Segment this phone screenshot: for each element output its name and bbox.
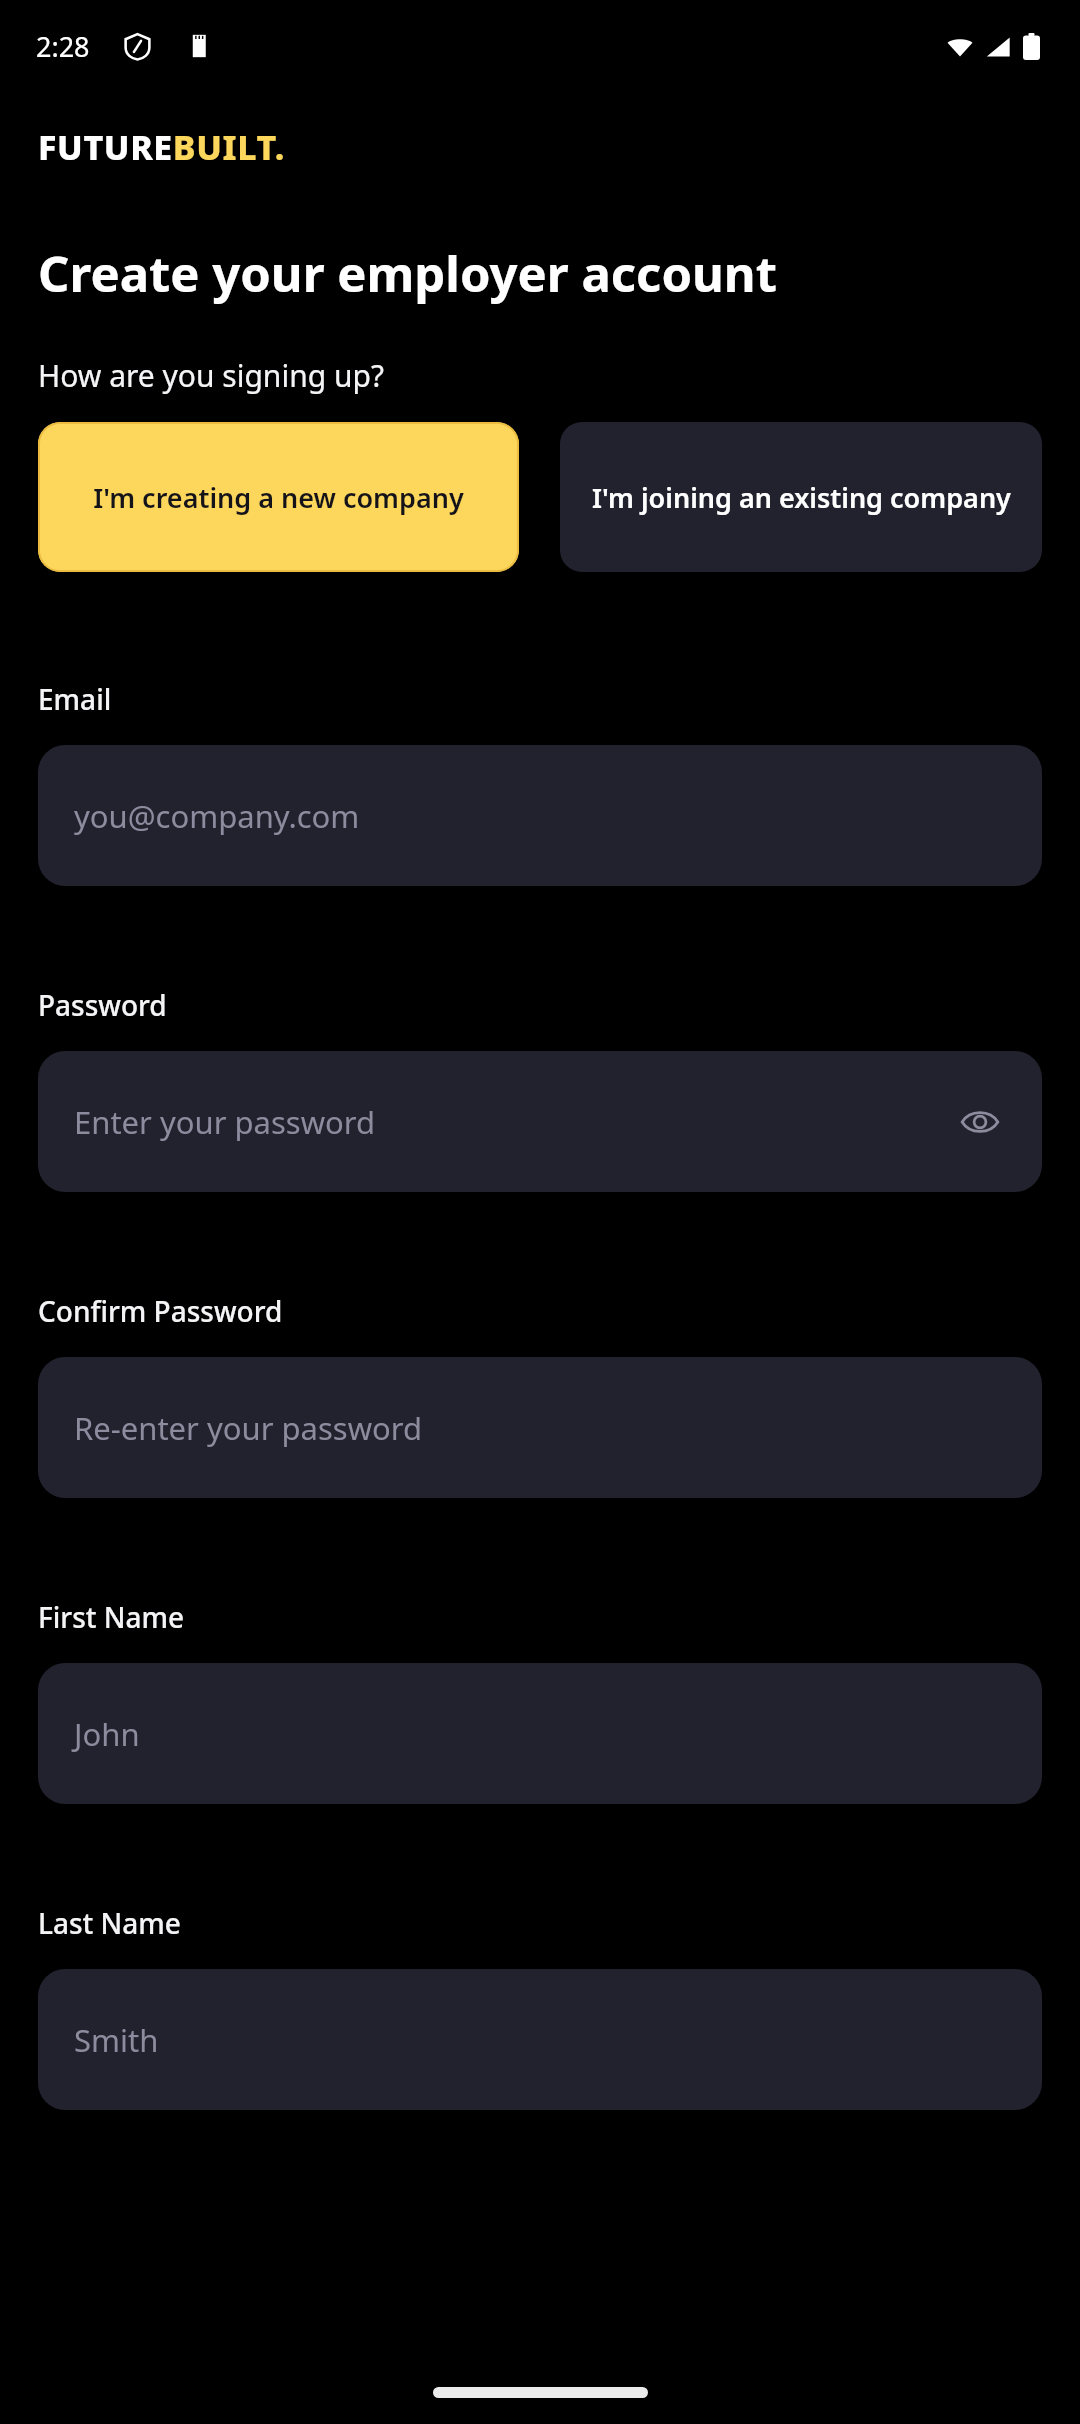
staticText: Confirm Password bbox=[38, 1292, 283, 1330]
button[interactable]: Enter your password bbox=[38, 1051, 1042, 1192]
staticText: Password bbox=[38, 986, 167, 1024]
button[interactable]: FUTUREBUILT. bbox=[38, 124, 286, 170]
staticText: How are you signing up? bbox=[38, 355, 384, 396]
button[interactable]: Re-enter your password bbox=[38, 1357, 1042, 1498]
staticText: FUTUREBUILT. bbox=[38, 124, 286, 170]
staticText: 2:28 bbox=[36, 28, 90, 65]
staticText: Email bbox=[38, 680, 112, 718]
button[interactable]: Smith bbox=[38, 1969, 1042, 2110]
staticText: I'm joining an existing company bbox=[592, 479, 1011, 516]
button[interactable]: John bbox=[38, 1663, 1042, 1804]
staticText: Smith bbox=[74, 2019, 159, 2061]
button[interactable]: you@company.com bbox=[38, 745, 1042, 886]
staticText: First Name bbox=[38, 1598, 185, 1636]
button[interactable]: I'm joining an existing company bbox=[560, 422, 1042, 572]
button[interactable]: I'm creating a new company bbox=[38, 422, 519, 572]
staticText: John bbox=[74, 1713, 140, 1755]
staticText: Enter your password bbox=[74, 1101, 376, 1143]
staticText: you@company.com bbox=[74, 795, 360, 837]
staticText: I'm creating a new company bbox=[93, 479, 464, 516]
staticText: Re-enter your password bbox=[74, 1407, 423, 1449]
staticText: Create your employer account bbox=[38, 240, 777, 307]
staticText: Last Name bbox=[38, 1904, 181, 1942]
button[interactable]: Show password bbox=[952, 1094, 1008, 1150]
